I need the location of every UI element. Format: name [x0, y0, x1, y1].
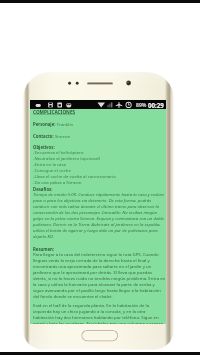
staticText: Personaje: — [33, 121, 57, 127]
staticText: -Encuentra el helicóptero -Neutraliza al… — [33, 149, 116, 185]
staticText: Desafíos: — [33, 186, 53, 192]
staticText: Para llegar a la casa del indeterreno si… — [33, 251, 166, 299]
staticText: Contacto: — [33, 133, 55, 139]
staticText: Resumen: — [33, 246, 55, 252]
staticText: Objetivos: — [33, 144, 55, 150]
staticText: 89% — [136, 102, 147, 109]
staticText: Simeon — [55, 133, 71, 139]
staticText: Franklin — [57, 121, 74, 127]
staticText: Está en el hall de la segunda planta. En… — [33, 302, 166, 324]
staticText: 00:29 — [148, 101, 164, 109]
staticText: Tiempo de misión 5:00. Conduce rápidamen… — [33, 191, 166, 239]
staticText: COMPLICACIONES — [33, 109, 76, 115]
